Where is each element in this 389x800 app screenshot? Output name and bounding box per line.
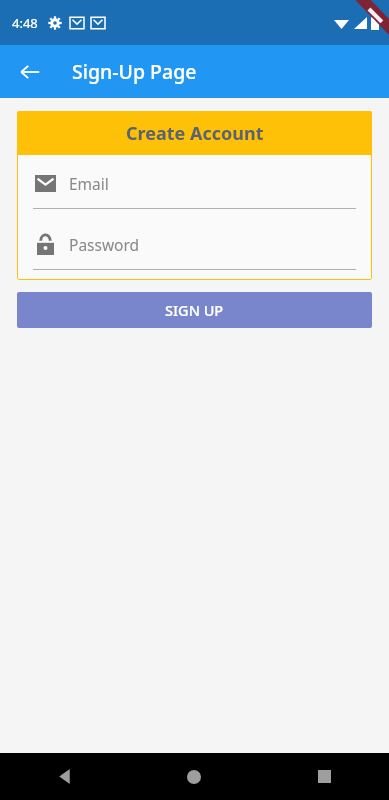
button[interactable]: Email	[33, 171, 356, 209]
button[interactable]: Home	[129, 753, 259, 800]
staticText: Sign-Up Page	[72, 58, 197, 85]
staticText: Email	[69, 173, 109, 194]
staticText: 4:48	[12, 14, 38, 32]
button[interactable]: Back	[8, 50, 52, 94]
button[interactable]: SIGN UP	[17, 292, 372, 328]
button[interactable]: Recent apps	[259, 753, 389, 800]
staticText: SIGN UP	[165, 300, 224, 320]
staticText: Create Account	[126, 121, 264, 146]
button[interactable]: Back	[0, 753, 129, 800]
button[interactable]: Password	[33, 232, 356, 270]
staticText: Password	[69, 234, 140, 255]
